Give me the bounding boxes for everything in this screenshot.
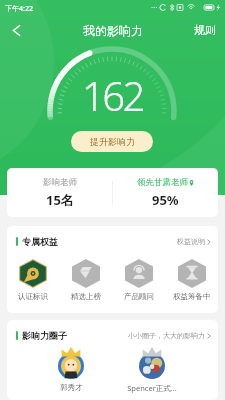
button[interactable]: 规则 xyxy=(185,17,225,43)
staticText: 产品顾问 xyxy=(124,292,154,301)
button[interactable]: 精选上榜 xyxy=(59,259,112,301)
button[interactable]: 产品顾问 xyxy=(112,259,165,301)
staticText: 专属权益 xyxy=(22,236,58,247)
staticText: 162 xyxy=(82,68,143,122)
staticText: 小小圈子，大大的影响力 xyxy=(128,331,205,340)
button[interactable]: 郭秀才 xyxy=(41,353,101,392)
staticText: 郭秀才 xyxy=(60,383,83,392)
staticText: Spencer正式... xyxy=(127,383,177,393)
staticText: 15名 xyxy=(46,191,74,209)
staticText: 影响老师 xyxy=(43,177,77,188)
staticText: 提升影响力 xyxy=(90,136,135,147)
button[interactable]: 权益筹备中 xyxy=(165,259,218,301)
button[interactable]: 权益说明 xyxy=(177,235,211,248)
staticText: 权益说明 xyxy=(177,237,205,246)
staticText: 下午4:22 xyxy=(5,4,33,14)
staticText: 影响力圈子 xyxy=(22,330,67,341)
button[interactable]: 小小圈子，大大的影响力 xyxy=(128,329,211,342)
button[interactable]: 认证标识 xyxy=(7,259,59,301)
staticText: 95% xyxy=(152,191,179,209)
button[interactable]: 影响老师 xyxy=(7,168,112,217)
button[interactable]: Spencer正式... xyxy=(122,353,182,393)
staticText: 我的影响力 xyxy=(83,23,143,38)
staticText: 规则 xyxy=(194,23,216,37)
button[interactable]: 领先甘肃老师 xyxy=(113,168,218,217)
staticText: 权益筹备中 xyxy=(173,292,211,301)
staticText: 精选上榜 xyxy=(71,292,101,301)
staticText: 认证标识 xyxy=(18,292,48,301)
staticText: 领先甘肃老师 xyxy=(137,177,188,188)
button[interactable]: 提升影响力 xyxy=(71,131,153,152)
button[interactable]: Back xyxy=(0,17,32,43)
